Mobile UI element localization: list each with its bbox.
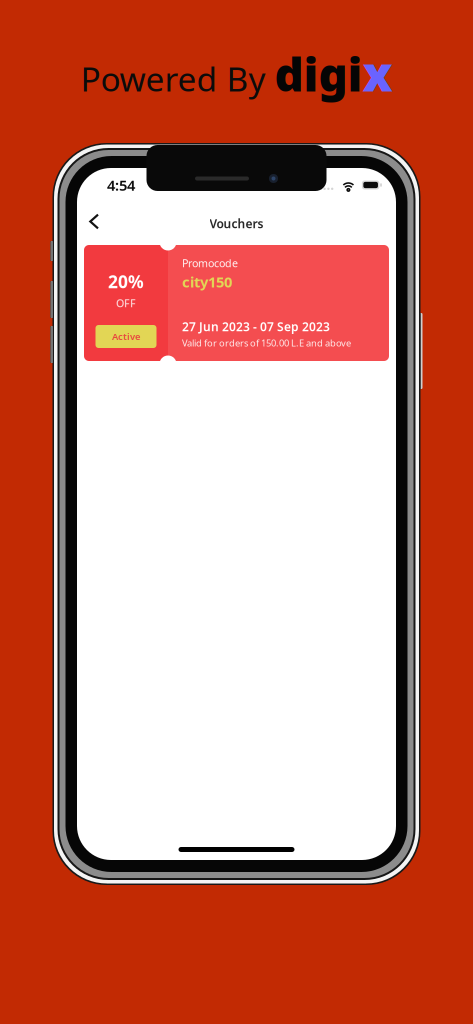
button[interactable]: Back xyxy=(79,205,109,237)
staticText: x xyxy=(362,41,392,105)
staticText: 4:54 xyxy=(107,175,135,195)
button[interactable]: 20% xyxy=(84,245,389,361)
staticText: Vouchers xyxy=(209,215,263,231)
staticText: Promocode xyxy=(182,256,238,270)
staticText: OFF xyxy=(116,296,136,310)
staticText: 27 Jun 2023 - 07 Sep 2023 xyxy=(182,319,330,335)
staticText: Active xyxy=(112,330,140,343)
staticText: city150 xyxy=(182,272,232,292)
staticText: digi xyxy=(274,44,362,104)
staticText: Valid for orders of 150.00 L.E and above xyxy=(182,337,351,349)
staticText: 20% xyxy=(108,270,144,293)
staticText: Powered By xyxy=(80,57,274,101)
